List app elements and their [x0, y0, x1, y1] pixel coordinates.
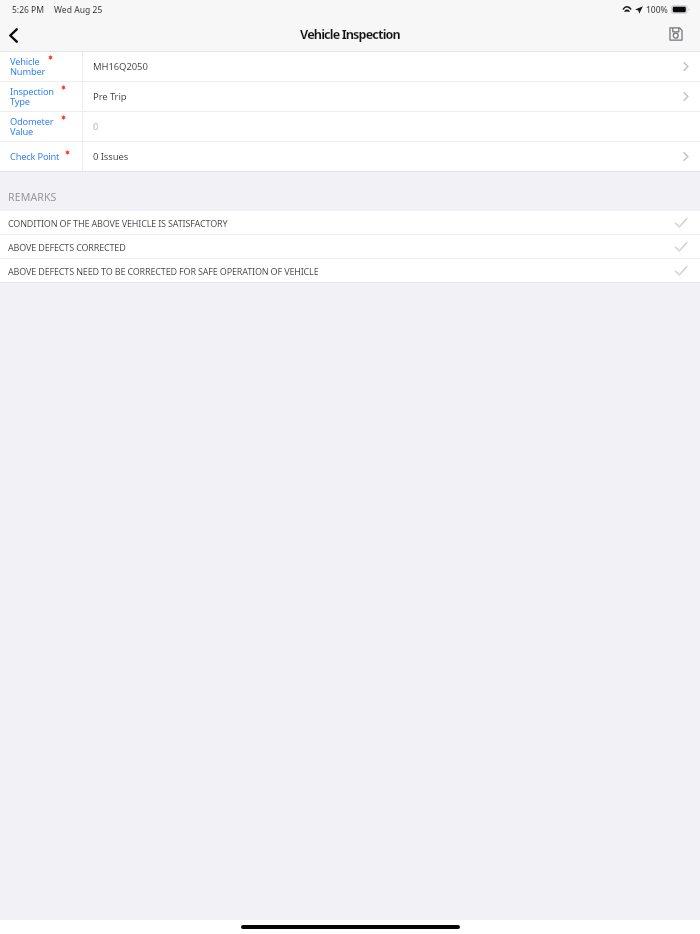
staticText: Vehicle Number: [10, 55, 46, 78]
staticText: 100%: [646, 4, 668, 16]
button[interactable]: Select CONDITION OF THE ABOVE VEHICLE IS…: [662, 211, 700, 234]
button[interactable]: Back: [0, 20, 27, 51]
staticText: 0: [93, 120, 99, 133]
staticText: REMARKS: [8, 190, 57, 204]
button[interactable]: Vehicle Number: [0, 52, 700, 81]
button[interactable]: ABOVE DEFECTS CORRECTED: [0, 235, 700, 258]
staticText: 5:26 PM: [12, 4, 45, 16]
staticText: Wed Aug 25: [54, 4, 103, 16]
staticText: ABOVE DEFECTS NEED TO BE CORRECTED FOR S…: [8, 265, 662, 277]
staticText: Odometer Value: [10, 115, 54, 138]
staticText: ABOVE DEFECTS CORRECTED: [8, 241, 662, 253]
staticText: Vehicle Inspection: [300, 26, 400, 43]
button[interactable]: ABOVE DEFECTS NEED TO BE CORRECTED FOR S…: [0, 259, 700, 282]
button[interactable]: Odometer Value: [0, 112, 700, 141]
staticText: CONDITION OF THE ABOVE VEHICLE IS SATISF…: [8, 217, 662, 229]
button[interactable]: Check Point: [0, 142, 700, 171]
staticText: 0 Issues: [93, 150, 129, 163]
button[interactable]: Inspection Type: [0, 82, 700, 111]
staticText: Check Point: [10, 150, 60, 163]
button[interactable]: Select ABOVE DEFECTS CORRECTED: [662, 235, 700, 258]
button[interactable]: Save: [656, 20, 700, 51]
button[interactable]: Select ABOVE DEFECTS NEED TO BE CORRECTE…: [662, 259, 700, 282]
staticText: Pre Trip: [93, 90, 127, 103]
button[interactable]: CONDITION OF THE ABOVE VEHICLE IS SATISF…: [0, 211, 700, 234]
staticText: MH16Q2050: [93, 60, 148, 73]
staticText: Inspection Type: [10, 85, 54, 108]
